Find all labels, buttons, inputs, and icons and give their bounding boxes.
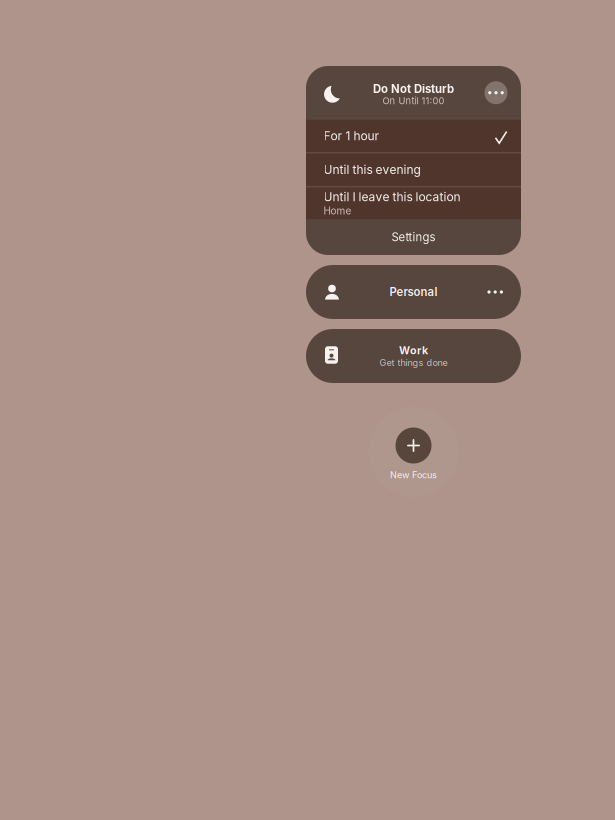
- staticText: Get things done: [379, 357, 447, 368]
- staticText: On Until 11:00: [382, 95, 444, 106]
- button[interactable]: New Focus: [306, 424, 521, 484]
- button[interactable]: Until this evening: [306, 153, 521, 186]
- button[interactable]: For 1 hour: [306, 120, 521, 152]
- button[interactable]: Work: [306, 329, 521, 383]
- staticText: Until this evening: [324, 162, 421, 177]
- button[interactable]: Settings: [306, 219, 521, 255]
- staticText: Until I leave this location: [324, 190, 461, 204]
- staticText: For 1 hour: [324, 129, 380, 143]
- staticText: Do Not Disturb: [373, 82, 454, 96]
- button[interactable]: Until I leave this location: [306, 187, 521, 219]
- button[interactable]: Personal: [306, 265, 521, 319]
- staticText: Personal: [389, 285, 437, 299]
- staticText: Settings: [391, 230, 435, 244]
- staticText: New Focus: [390, 469, 437, 480]
- staticText: Work: [399, 344, 428, 357]
- staticText: Home: [324, 205, 352, 217]
- button[interactable]: Do Not Disturb: [306, 66, 521, 120]
